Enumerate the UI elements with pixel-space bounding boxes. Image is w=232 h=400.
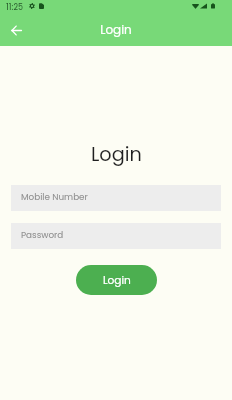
staticText: Password — [21, 229, 64, 241]
staticText: Mobile Number — [21, 191, 88, 203]
staticText: Login — [103, 273, 131, 288]
staticText: Login — [91, 141, 142, 168]
button[interactable]: Back — [5, 19, 27, 41]
button[interactable]: Password — [11, 223, 221, 249]
button[interactable]: Mobile Number — [11, 185, 221, 211]
staticText: Login — [100, 21, 132, 38]
button[interactable]: Login — [76, 265, 157, 295]
staticText: 11:25 — [6, 2, 24, 13]
